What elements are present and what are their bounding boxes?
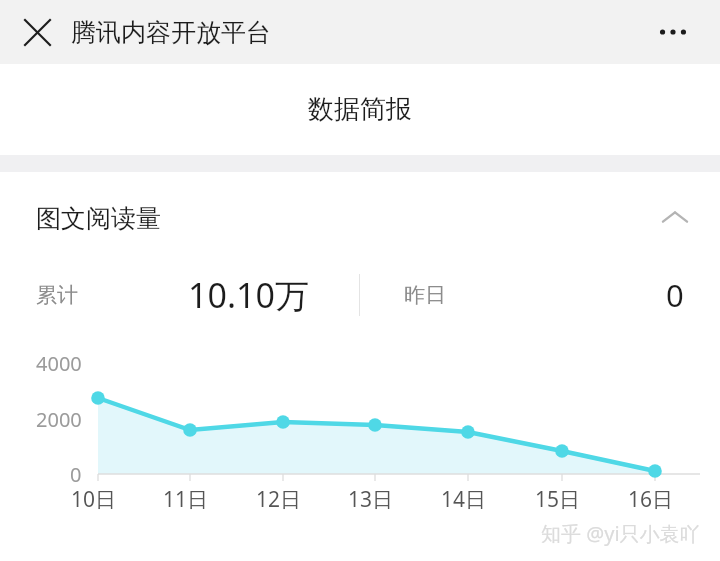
staticText: 15日 [535, 485, 581, 514]
staticText: 累计 [36, 282, 78, 308]
staticText: 10日 [71, 485, 117, 514]
staticText: 知乎 @yi只小袁吖 [541, 520, 700, 547]
staticText: 图文阅读量 [36, 203, 161, 234]
staticText: 16日 [628, 485, 674, 514]
staticText: 11日 [163, 485, 209, 514]
staticText: 数据简报 [308, 93, 412, 126]
button[interactable]: More options [648, 7, 698, 57]
button[interactable]: Close [12, 7, 62, 57]
staticText: 0 [70, 461, 82, 488]
staticText: 0 [666, 274, 684, 316]
staticText: 13日 [348, 485, 394, 514]
button[interactable]: 累计 [0, 266, 359, 324]
staticText: 10.10万 [188, 272, 309, 318]
staticText: 2000 [36, 406, 82, 433]
staticText: 昨日 [404, 282, 446, 308]
button[interactable]: 昨日 [360, 266, 720, 324]
button[interactable]: 图文阅读量 [0, 190, 720, 246]
staticText: 腾讯内容开放平台 [71, 17, 271, 48]
other: Collapse [652, 195, 698, 241]
staticText: 4000 [36, 350, 82, 377]
staticText: 12日 [256, 485, 302, 514]
staticText: 14日 [441, 485, 487, 514]
